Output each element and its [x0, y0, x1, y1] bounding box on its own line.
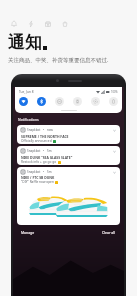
- staticText: Snapkbot: [27, 170, 41, 174]
- staticText: 通知: [8, 32, 42, 53]
- other: Expand: [113, 171, 116, 174]
- staticText: 100%: [111, 90, 118, 94]
- button[interactable]: Flashlight: [73, 97, 82, 106]
- button[interactable]: Clear all: [100, 228, 118, 237]
- staticText: now: [47, 128, 53, 132]
- button[interactable]: Snapkbot: [17, 167, 120, 225]
- staticText: •: [43, 170, 45, 174]
- staticText: Officially announced: [21, 139, 52, 143]
- button[interactable]: Do not disturb: [55, 97, 64, 106]
- staticText: Snapkbot: [27, 128, 41, 132]
- button[interactable]: Store: [42, 18, 53, 29]
- staticText: Tue, Jun 8: [19, 90, 34, 94]
- button[interactable]: Bluetooth: [37, 97, 46, 106]
- staticText: Snapkbot: [27, 149, 41, 153]
- staticText: Manage: [21, 230, 35, 235]
- staticText: "DIY" Raffle now open: [21, 180, 54, 184]
- staticText: •: [43, 128, 45, 132]
- staticText: NIKE DUNK "SEA GLASS SLATE": [21, 155, 73, 160]
- button[interactable]: Wi-Fi: [19, 97, 28, 106]
- staticText: Clear all: [102, 230, 116, 235]
- button[interactable]: Snapkbot: [17, 146, 120, 165]
- staticText: 关注商品、中奖、补货等重要信息不错过.: [8, 56, 109, 64]
- staticText: Restock info + go go go: [21, 160, 57, 164]
- button[interactable]: Manage: [19, 228, 37, 237]
- staticText: 5m: [47, 149, 52, 153]
- staticText: SUPREME / THE NORTH FACE: [21, 134, 69, 139]
- button[interactable]: Notifications: [8, 18, 19, 29]
- staticText: NIKE / FTC SB DUNK: [21, 175, 55, 180]
- button[interactable]: Cart: [59, 18, 70, 29]
- staticText: 5m: [47, 170, 52, 174]
- button[interactable]: Flash: [25, 18, 36, 29]
- other: Expand: [113, 150, 116, 153]
- other: Expand: [113, 129, 116, 132]
- button[interactable]: Auto rotate: [91, 97, 100, 106]
- button[interactable]: Snapkbot: [17, 125, 120, 144]
- button[interactable]: Battery saver: [109, 97, 118, 106]
- staticText: Notifications: [18, 117, 39, 122]
- staticText: •: [43, 149, 45, 153]
